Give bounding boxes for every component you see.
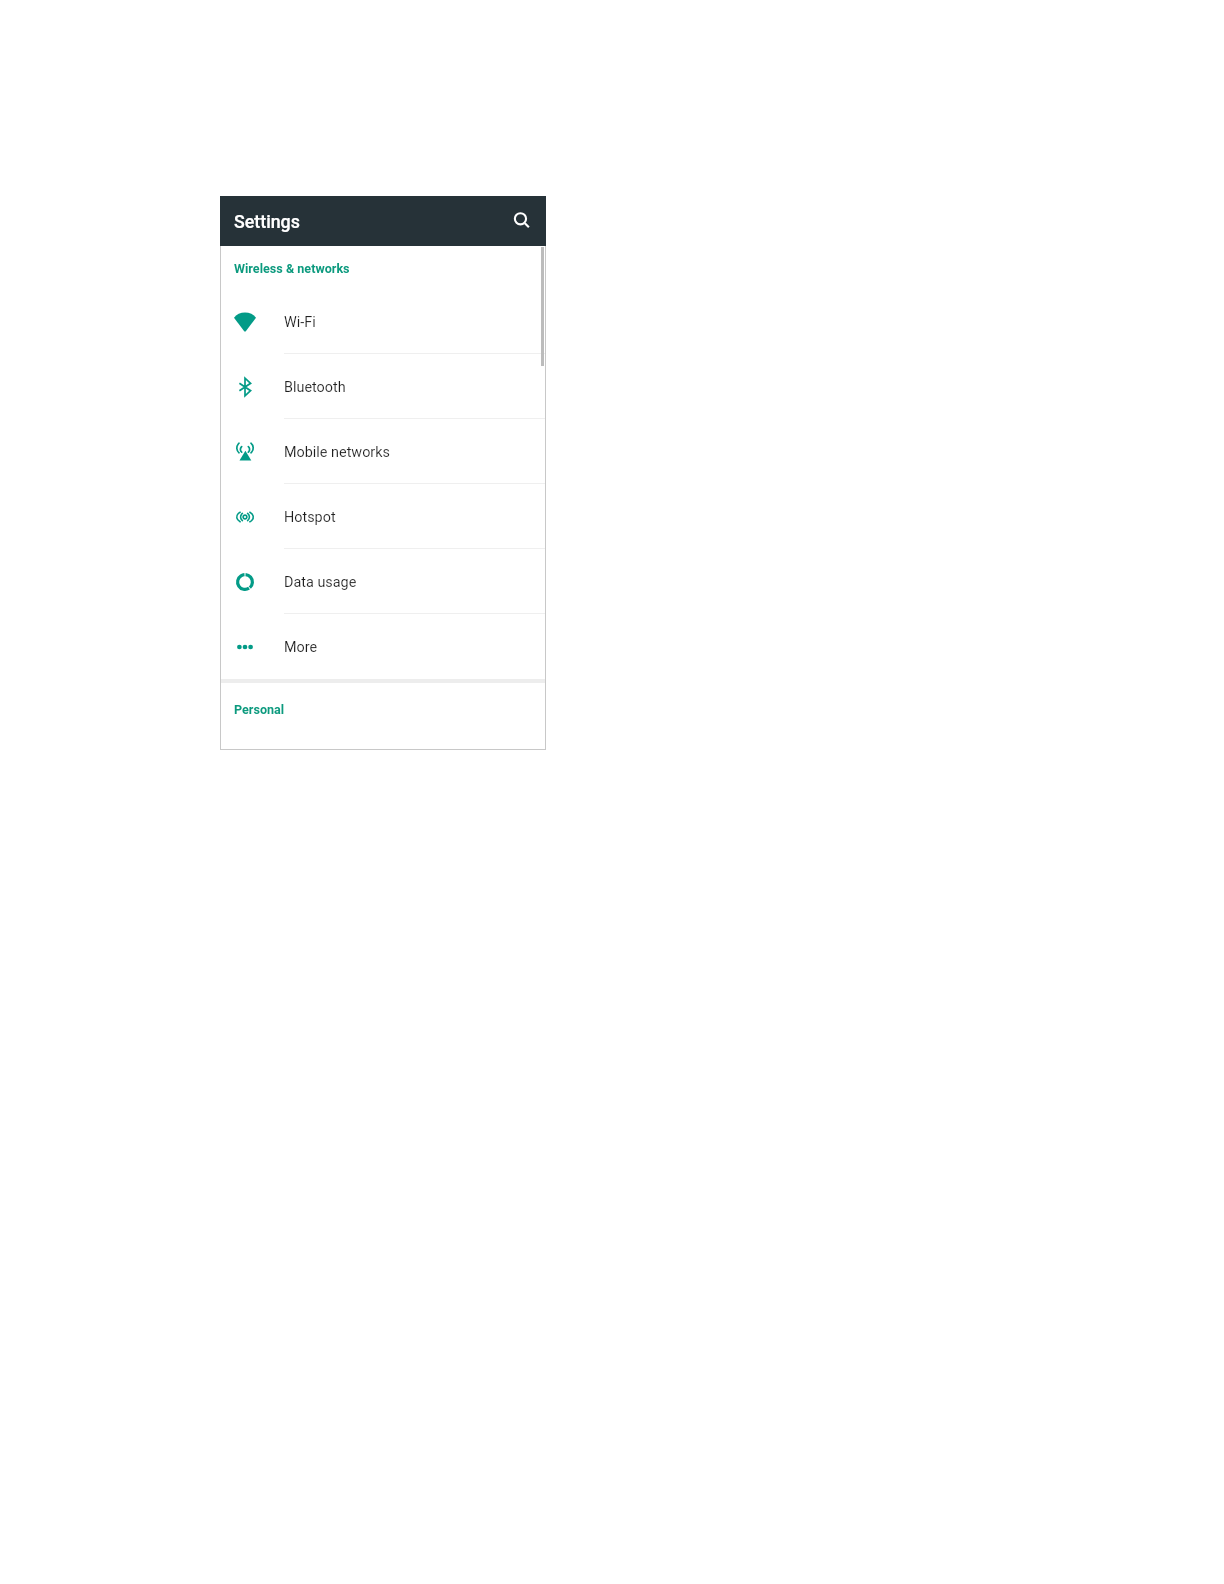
- button[interactable]: Hotspot: [220, 484, 546, 549]
- staticText: Personal: [234, 702, 285, 717]
- staticText: More: [284, 639, 318, 656]
- staticText: Settings: [234, 211, 300, 232]
- staticText: Bluetooth: [284, 379, 346, 396]
- button[interactable]: Wi-Fi: [220, 289, 546, 354]
- staticText: Wireless & networks: [234, 261, 350, 276]
- staticText: Data usage: [284, 574, 357, 591]
- button[interactable]: More: [220, 614, 546, 679]
- staticText: Hotspot: [284, 509, 336, 526]
- staticText: Mobile networks: [284, 444, 390, 461]
- button[interactable]: Search: [506, 205, 538, 237]
- staticText: Wi-Fi: [284, 314, 316, 331]
- button[interactable]: Bluetooth: [220, 354, 546, 419]
- button[interactable]: Mobile networks: [220, 419, 546, 484]
- button[interactable]: Data usage: [220, 549, 546, 614]
